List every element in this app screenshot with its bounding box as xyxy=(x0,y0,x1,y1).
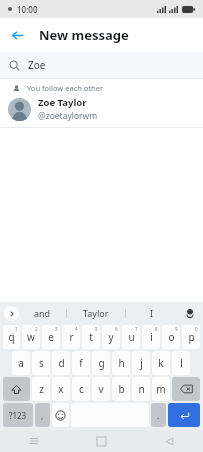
button[interactable]: z xyxy=(32,377,50,401)
staticText: and xyxy=(34,307,51,319)
button[interactable]: and xyxy=(19,302,66,324)
button[interactable]: b xyxy=(112,377,130,401)
staticText: 5 xyxy=(95,326,98,332)
button[interactable]: d xyxy=(52,351,70,375)
button[interactable]: Back xyxy=(0,18,34,52)
staticText: k xyxy=(158,356,164,370)
staticText: d xyxy=(58,356,65,370)
staticText: t xyxy=(89,330,93,344)
button[interactable]: g xyxy=(92,351,110,375)
button[interactable]: You follow each other xyxy=(0,79,203,127)
staticText: 7 xyxy=(135,326,138,332)
staticText: New message xyxy=(39,26,129,44)
button[interactable]: v xyxy=(92,377,110,401)
button[interactable]: More suggestions xyxy=(4,306,19,321)
button[interactable]: Comma xyxy=(35,403,50,427)
staticText: 4 xyxy=(75,326,78,332)
button[interactable]: Back xyxy=(135,430,203,452)
staticText: u xyxy=(128,330,135,344)
staticText: y xyxy=(108,330,114,344)
staticText: Taylor xyxy=(83,307,109,319)
staticText: 1 xyxy=(15,326,18,332)
button[interactable]: Emoji xyxy=(52,403,69,427)
button[interactable]: s xyxy=(32,351,50,375)
staticText: e xyxy=(48,330,54,344)
staticText: 8 xyxy=(155,326,158,332)
button[interactable]: Voice input xyxy=(177,302,203,324)
staticText: , xyxy=(41,409,44,421)
button[interactable]: n xyxy=(132,377,150,401)
staticText: b xyxy=(118,382,125,396)
button[interactable]: r xyxy=(62,325,80,349)
button[interactable]: Home xyxy=(67,430,135,452)
button[interactable]: i xyxy=(142,325,160,349)
button[interactable]: k xyxy=(152,351,170,375)
button[interactable]: a xyxy=(12,351,30,375)
button[interactable]: f xyxy=(72,351,90,375)
button[interactable]: l xyxy=(172,351,190,375)
staticText: 0 xyxy=(195,326,198,332)
staticText: . xyxy=(157,409,160,421)
staticText: You follow each other xyxy=(27,83,104,93)
staticText: I xyxy=(150,307,154,319)
staticText: q xyxy=(8,330,15,344)
staticText: h xyxy=(118,356,125,370)
button[interactable]: u xyxy=(122,325,140,349)
button[interactable]: Enter xyxy=(168,403,200,427)
staticText: 3 xyxy=(55,326,58,332)
button[interactable]: m xyxy=(152,377,170,401)
staticText: Zoe xyxy=(28,58,46,72)
staticText: n xyxy=(138,382,145,396)
button[interactable]: e xyxy=(42,325,60,349)
button[interactable]: Taylor xyxy=(67,302,125,324)
button[interactable]: o xyxy=(162,325,180,349)
button[interactable]: Period xyxy=(151,403,166,427)
staticText: f xyxy=(79,356,83,370)
staticText: @zoetaylorwm xyxy=(38,110,98,122)
staticText: Zoe Taylor xyxy=(38,96,87,109)
staticText: i xyxy=(150,330,153,344)
button[interactable]: j xyxy=(132,351,150,375)
button[interactable]: Recents xyxy=(0,430,67,452)
staticText: g xyxy=(98,356,105,370)
staticText: s xyxy=(39,356,44,370)
staticText: r xyxy=(69,330,74,344)
button[interactable]: ?123 xyxy=(3,403,33,427)
staticText: 10:00 xyxy=(17,4,38,15)
button[interactable]: x xyxy=(52,377,70,401)
staticText: z xyxy=(39,382,44,396)
button[interactable]: p xyxy=(182,325,200,349)
button[interactable]: Shift xyxy=(3,377,30,401)
button[interactable]: h xyxy=(112,351,130,375)
button[interactable]: t xyxy=(82,325,100,349)
staticText: o xyxy=(168,330,175,344)
staticText: x xyxy=(58,382,64,396)
staticText: l xyxy=(180,356,183,370)
button[interactable]: Zoe xyxy=(9,52,194,78)
staticText: ?123 xyxy=(9,410,27,421)
staticText: m xyxy=(156,382,166,396)
staticText: 9 xyxy=(175,326,178,332)
button[interactable]: q xyxy=(3,325,20,349)
staticText: c xyxy=(79,382,84,396)
staticText: 6 xyxy=(115,326,118,332)
staticText: p xyxy=(188,330,195,344)
button[interactable]: I xyxy=(126,302,177,324)
button[interactable]: y xyxy=(102,325,120,349)
staticText: v xyxy=(98,382,104,396)
staticText: a xyxy=(18,356,24,370)
staticText: j xyxy=(140,356,143,370)
button[interactable]: Backspace xyxy=(172,377,200,401)
button[interactable]: c xyxy=(72,377,90,401)
staticText: 2 xyxy=(35,326,38,332)
button[interactable]: w xyxy=(22,325,40,349)
staticText: w xyxy=(27,330,35,344)
